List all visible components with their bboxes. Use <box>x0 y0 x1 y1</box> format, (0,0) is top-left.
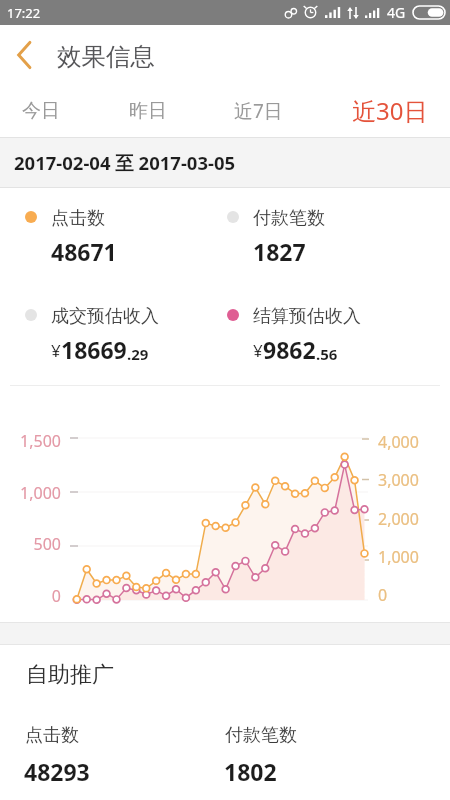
staticText: 2,000 <box>378 508 444 530</box>
staticText: 1,000 <box>378 546 444 568</box>
staticText: 1802 <box>224 756 277 787</box>
button[interactable]: Back <box>0 25 47 84</box>
staticText: 近7日 <box>234 98 283 124</box>
staticText: 48671 <box>51 236 117 267</box>
staticText: 18669 <box>61 334 127 365</box>
button[interactable]: 昨日 <box>82 84 214 137</box>
staticText: 3,000 <box>378 469 444 491</box>
button[interactable]: 成交预估收入 <box>24 305 224 365</box>
staticText: 4,000 <box>378 431 444 453</box>
button[interactable]: 近7日 <box>214 84 302 137</box>
staticText: 17:22 <box>7 4 41 22</box>
staticText: .56 <box>316 344 338 364</box>
staticText: 结算预估收入 <box>253 305 361 328</box>
staticText: 成交预估收入 <box>51 305 159 328</box>
staticText: 自助推广 <box>26 661 114 689</box>
staticText: 点击数 <box>51 207 105 230</box>
staticText: 昨日 <box>129 99 167 123</box>
staticText: ¥ <box>51 339 61 362</box>
staticText: 48293 <box>24 756 90 787</box>
staticText: 付款笔数 <box>225 724 297 747</box>
staticText: 近30日 <box>352 94 428 127</box>
staticText: 0 <box>0 585 61 607</box>
button[interactable]: 点击数 <box>24 724 222 788</box>
staticText: 9862 <box>263 334 316 365</box>
staticText: 点击数 <box>25 724 79 747</box>
staticText: .29 <box>127 344 149 364</box>
staticText: 1827 <box>253 236 306 267</box>
button[interactable]: 结算预估收入 <box>226 305 426 365</box>
staticText: 4G <box>387 3 406 22</box>
staticText: 付款笔数 <box>253 207 325 230</box>
button[interactable]: 付款笔数 <box>226 207 426 267</box>
staticText: ¥ <box>253 339 263 362</box>
staticText: 1,500 <box>0 430 61 452</box>
button[interactable]: 近30日 <box>302 84 450 137</box>
staticText: 1,000 <box>0 482 61 504</box>
staticText: 500 <box>0 533 61 555</box>
staticText: 2017-02-04 至 2017-03-05 <box>14 150 236 175</box>
staticText: 0 <box>378 584 444 606</box>
button[interactable]: 今日 <box>0 84 82 137</box>
button[interactable]: 付款笔数 <box>224 724 422 788</box>
button[interactable]: 点击数 <box>24 207 224 267</box>
staticText: 效果信息 <box>57 41 155 72</box>
staticText: 今日 <box>22 99 60 123</box>
